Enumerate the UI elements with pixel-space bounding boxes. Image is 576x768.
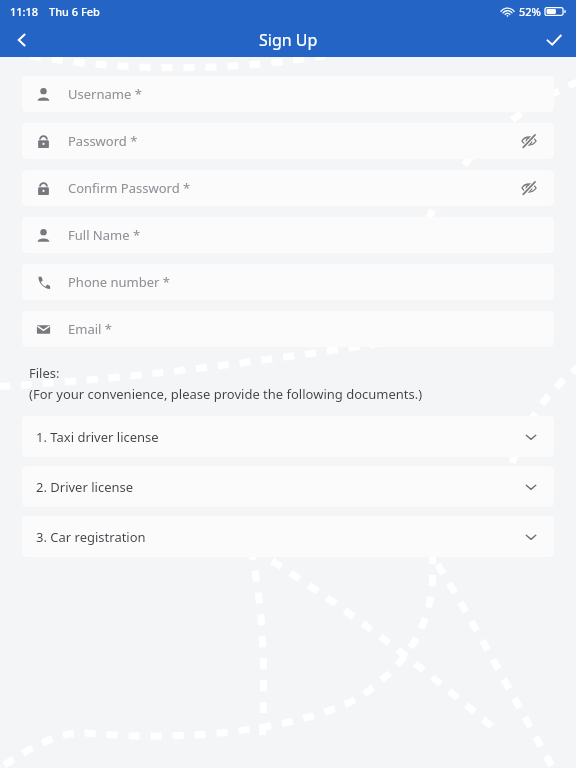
button[interactable]: Back bbox=[0, 22, 44, 57]
staticText: Files: bbox=[29, 364, 60, 382]
staticText: Username * bbox=[68, 85, 142, 103]
staticText: Phone number * bbox=[68, 273, 170, 291]
staticText: 52% bbox=[519, 4, 541, 19]
staticText: 11:18 bbox=[10, 4, 39, 19]
button[interactable]: Username * bbox=[22, 76, 554, 112]
button[interactable]: Confirm bbox=[532, 22, 576, 57]
staticText: 3. Car registration bbox=[36, 528, 146, 546]
staticText: 2. Driver license bbox=[36, 478, 134, 496]
button[interactable]: 3. Car registration bbox=[22, 516, 554, 557]
staticText: Email * bbox=[68, 320, 112, 338]
staticText: Thu 6 Feb bbox=[49, 4, 100, 19]
button[interactable]: 2. Driver license bbox=[22, 466, 554, 507]
button[interactable]: Show password bbox=[518, 177, 540, 199]
button[interactable]: Email * bbox=[22, 311, 554, 347]
button[interactable]: Full Name * bbox=[22, 217, 554, 253]
button[interactable]: Show password bbox=[518, 130, 540, 152]
staticText: (For your convenience, please provide th… bbox=[29, 385, 423, 403]
button[interactable]: Confirm Password * bbox=[22, 170, 554, 206]
button[interactable]: Password * bbox=[22, 123, 554, 159]
staticText: Confirm Password * bbox=[68, 179, 191, 197]
staticText: Password * bbox=[68, 132, 138, 150]
staticText: Full Name * bbox=[68, 226, 141, 244]
staticText: 1. Taxi driver license bbox=[36, 428, 159, 446]
staticText: Sign Up bbox=[259, 29, 318, 51]
button[interactable]: 1. Taxi driver license bbox=[22, 416, 554, 457]
button[interactable]: Phone number * bbox=[22, 264, 554, 300]
